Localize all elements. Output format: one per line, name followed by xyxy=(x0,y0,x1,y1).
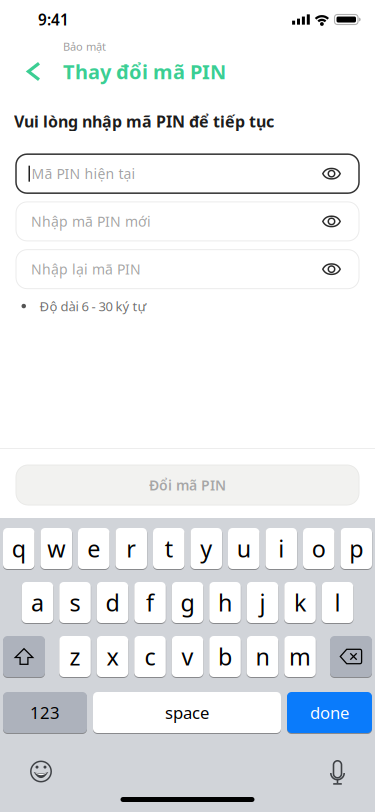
button[interactable]: q xyxy=(3,528,34,569)
button[interactable]: l xyxy=(322,582,353,623)
staticText: Thay đổi mã PIN xyxy=(63,58,226,85)
staticText: e xyxy=(87,533,100,564)
button[interactable]: w xyxy=(40,528,72,569)
staticText: Bảo mật xyxy=(63,39,106,54)
staticText: o xyxy=(312,533,326,564)
button[interactable]: j xyxy=(247,582,278,623)
button[interactable]: Show PIN xyxy=(318,255,345,283)
button[interactable]: Delete xyxy=(330,636,372,677)
button[interactable]: i xyxy=(265,528,297,569)
staticText: z xyxy=(69,641,80,672)
staticText: Đổi mã PIN xyxy=(149,475,226,495)
button[interactable]: Shift xyxy=(3,636,45,677)
button[interactable]: space xyxy=(93,692,281,733)
staticText: Vui lòng nhập mã PIN để tiếp tục xyxy=(14,110,274,132)
button[interactable]: o xyxy=(303,528,334,569)
button[interactable]: d xyxy=(97,582,128,623)
staticText: l xyxy=(334,587,340,618)
staticText: t xyxy=(165,533,173,564)
staticText: m xyxy=(289,641,311,672)
staticText: 9:41 xyxy=(38,9,69,30)
staticText: i xyxy=(278,533,284,564)
staticText: a xyxy=(31,587,44,618)
button[interactable]: Back xyxy=(0,56,48,87)
button[interactable]: Đổi mã PIN xyxy=(16,465,359,505)
staticText: Nhập lại mã PIN xyxy=(31,260,141,279)
button[interactable]: c xyxy=(134,636,166,677)
staticText: w xyxy=(47,533,65,564)
staticText: done xyxy=(310,701,349,724)
button[interactable]: v xyxy=(172,636,203,677)
button[interactable]: Show PIN xyxy=(318,207,345,235)
staticText: g xyxy=(180,587,194,618)
button[interactable]: p xyxy=(340,528,372,569)
staticText: c xyxy=(144,641,155,672)
staticText: q xyxy=(12,533,26,564)
button[interactable]: 123 xyxy=(3,692,87,733)
button[interactable]: h xyxy=(209,582,241,623)
staticText: r xyxy=(126,533,136,564)
staticText: f xyxy=(146,587,154,618)
button[interactable]: b xyxy=(209,636,241,677)
button[interactable]: k xyxy=(284,582,316,623)
staticText: u xyxy=(237,533,251,564)
button[interactable]: n xyxy=(247,636,278,677)
button[interactable]: m xyxy=(284,636,316,677)
staticText: k xyxy=(294,587,306,618)
staticText: Độ dài 6 - 30 ký tự xyxy=(39,297,146,315)
button[interactable]: z xyxy=(59,636,91,677)
staticText: Mã PIN hiện tại xyxy=(31,164,135,183)
button[interactable]: s xyxy=(59,582,91,623)
staticText: v xyxy=(181,641,193,672)
staticText: Nhập mã PIN mới xyxy=(31,212,151,231)
button[interactable]: t xyxy=(153,528,184,569)
button[interactable]: x xyxy=(97,636,128,677)
staticText: b xyxy=(218,641,232,672)
staticText: 123 xyxy=(30,701,60,724)
button[interactable]: g xyxy=(172,582,203,623)
button[interactable]: u xyxy=(228,528,259,569)
staticText: p xyxy=(349,533,363,564)
button[interactable]: f xyxy=(134,582,166,623)
button[interactable]: e xyxy=(78,528,109,569)
button[interactable]: Dictation xyxy=(330,733,375,785)
button[interactable]: y xyxy=(190,528,222,569)
button[interactable]: Emoji xyxy=(0,735,52,782)
staticText: x xyxy=(106,641,118,672)
button[interactable]: a xyxy=(22,582,53,623)
staticText: y xyxy=(200,533,212,564)
staticText: j xyxy=(259,587,265,618)
button[interactable]: r xyxy=(115,528,147,569)
staticText: h xyxy=(218,587,232,618)
button[interactable]: done xyxy=(287,692,372,733)
staticText: s xyxy=(69,587,80,618)
staticText: d xyxy=(105,587,119,618)
button[interactable]: Show PIN xyxy=(318,160,345,188)
staticText: n xyxy=(255,641,269,672)
staticText: space xyxy=(165,701,209,724)
